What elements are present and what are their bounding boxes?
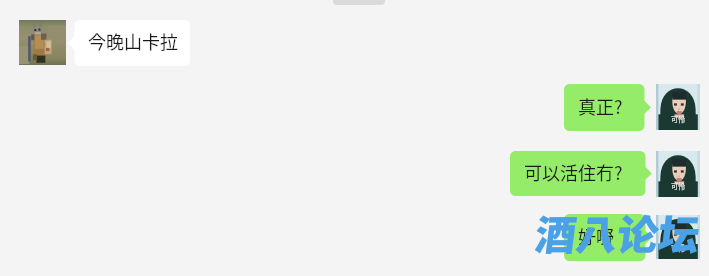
staticText: 真正?	[578, 93, 623, 119]
staticText: 可怜	[671, 243, 685, 253]
button[interactable]: Contact avatar	[19, 20, 66, 65]
staticText: 可以活住冇?	[524, 159, 623, 185]
button[interactable]: My avatar	[656, 151, 700, 197]
button[interactable]: 可以活住冇?	[510, 151, 652, 196]
button[interactable]: 好嘢	[564, 214, 652, 261]
button[interactable]: My avatar	[656, 215, 700, 259]
staticText: 好嘢	[578, 223, 614, 249]
button[interactable]: Timestamp	[333, 0, 385, 5]
button[interactable]: My avatar	[656, 84, 700, 130]
button[interactable]: 今晚山卡拉	[68, 20, 190, 66]
staticText: 可怜	[671, 181, 685, 191]
button[interactable]: 真正?	[564, 84, 651, 131]
staticText: 今晚山卡拉	[88, 28, 178, 54]
staticText: 可怜	[671, 114, 685, 124]
